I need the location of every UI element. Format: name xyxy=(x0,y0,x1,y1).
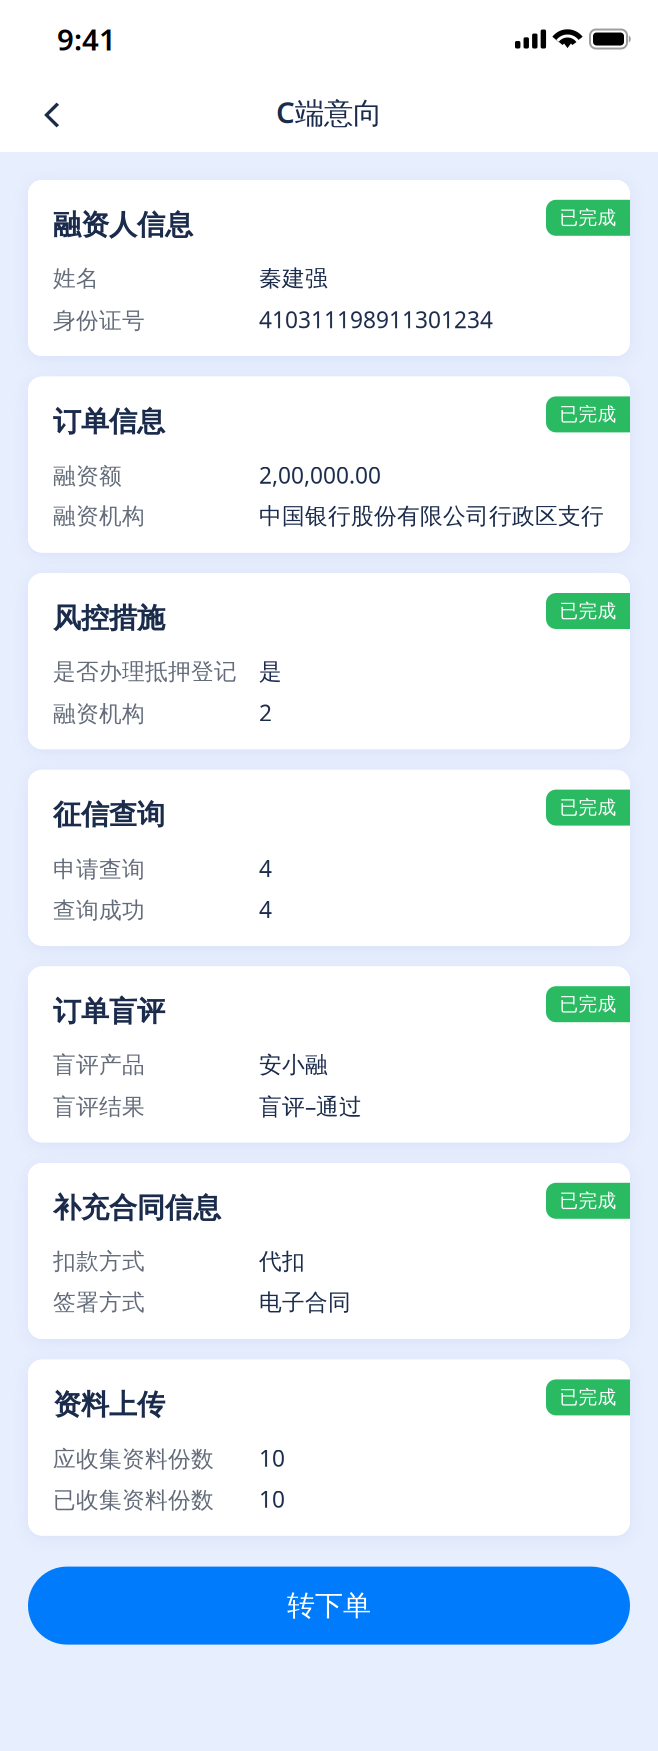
staticText: 融资人信息 xyxy=(53,208,193,242)
staticText: 融资机构 xyxy=(53,502,145,530)
staticText: 已完成 xyxy=(559,403,616,426)
staticText: 补充合同信息 xyxy=(53,1191,221,1225)
staticText: C端意向 xyxy=(276,92,382,131)
staticText: 盲评–通过 xyxy=(259,1091,362,1121)
staticText: 4 xyxy=(259,853,272,883)
staticText: 订单信息 xyxy=(53,404,165,439)
staticText: 应收集资料份数 xyxy=(53,1445,214,1473)
staticText: 410311198911301234 xyxy=(259,304,493,334)
staticText: 已完成 xyxy=(559,993,616,1016)
staticText: 资料上传 xyxy=(53,1387,165,1422)
staticText: 订单盲评 xyxy=(53,994,165,1029)
staticText: 安小融 xyxy=(259,1051,328,1079)
staticText: 姓名 xyxy=(53,265,99,292)
staticText: 申请查询 xyxy=(53,856,145,883)
staticText: 盲评产品 xyxy=(53,1051,145,1079)
staticText: 代扣 xyxy=(259,1248,305,1275)
staticText: 10 xyxy=(259,1484,285,1514)
staticText: 身份证号 xyxy=(53,307,145,335)
staticText: 9:41 xyxy=(57,19,116,58)
staticText: 已收集资料份数 xyxy=(53,1486,214,1514)
staticText: 已完成 xyxy=(559,599,616,622)
staticText: 2 xyxy=(259,698,272,728)
staticText: 查询成功 xyxy=(53,897,145,924)
staticText: 已完成 xyxy=(559,1386,616,1409)
staticText: 是 xyxy=(259,658,282,686)
staticText: 已完成 xyxy=(559,796,616,819)
staticText: 风控措施 xyxy=(53,601,165,635)
staticText: 已完成 xyxy=(559,1189,616,1212)
staticText: 融资机构 xyxy=(53,700,145,728)
staticText: 电子合同 xyxy=(259,1289,351,1316)
staticText: 转下单 xyxy=(287,1588,371,1623)
staticText: 扣款方式 xyxy=(53,1248,145,1275)
staticText: 10 xyxy=(259,1443,285,1473)
staticText: 中国银行股份有限公司行政区支行 xyxy=(259,502,604,530)
button[interactable]: 转下单 xyxy=(28,1567,630,1645)
staticText: 盲评结果 xyxy=(53,1093,145,1121)
staticText: 征信查询 xyxy=(53,798,165,832)
staticText: 4 xyxy=(259,894,272,924)
staticText: 秦建强 xyxy=(259,265,328,292)
staticText: 签署方式 xyxy=(53,1289,145,1316)
staticText: 是否办理抵押登记 xyxy=(53,658,237,686)
staticText: 已完成 xyxy=(559,206,616,229)
button[interactable]: 返回 xyxy=(21,84,83,146)
staticText: 2,00,000.00 xyxy=(259,460,381,490)
staticText: 融资额 xyxy=(53,462,122,490)
